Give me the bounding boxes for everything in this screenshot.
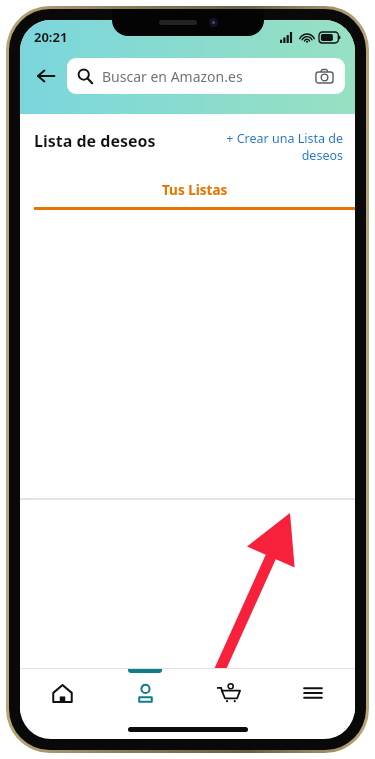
staticText: 20:21 — [34, 28, 68, 46]
button[interactable]: Camera search — [313, 65, 335, 87]
staticText: + Crear una Lista de deseos — [225, 130, 343, 163]
staticText: Buscar en Amazon.es — [102, 67, 243, 86]
button[interactable]: Buscar en Amazon.es — [67, 58, 345, 94]
button[interactable]: Cart — [187, 669, 271, 713]
button[interactable]: Tus Listas — [34, 181, 355, 210]
staticText: Tus Listas — [162, 181, 228, 199]
button[interactable]: Home — [20, 669, 103, 713]
staticText: Lista de deseos — [34, 130, 156, 152]
button[interactable]: Account — [103, 669, 187, 713]
button[interactable]: Menu — [271, 669, 355, 713]
button[interactable]: + Crear una Lista de deseos — [225, 130, 343, 163]
button[interactable]: Back — [28, 58, 64, 94]
